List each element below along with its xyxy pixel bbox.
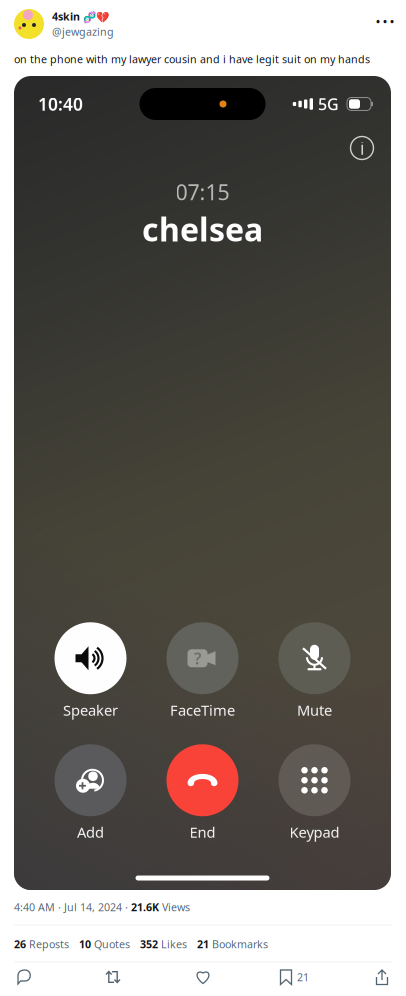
staticText: 26 bbox=[14, 937, 26, 951]
staticText: ? bbox=[194, 648, 201, 669]
staticText: on the phone with my lawyer cousin and i… bbox=[14, 52, 370, 66]
button[interactable]: ? bbox=[146, 622, 258, 720]
button[interactable]: 26 bbox=[14, 935, 69, 953]
button[interactable]: Repost bbox=[96, 963, 130, 991]
button[interactable]: Add bbox=[34, 744, 146, 842]
staticText: Likes bbox=[161, 937, 187, 951]
staticText: Views bbox=[159, 900, 190, 914]
staticText: Bookmarks bbox=[212, 937, 268, 951]
staticText: 07:15 bbox=[175, 178, 229, 206]
staticText: 21 bbox=[297, 970, 309, 984]
staticText: chelsea bbox=[142, 208, 263, 250]
button[interactable]: More options bbox=[369, 7, 401, 35]
button[interactable]: Bookmark, 21 bbox=[277, 963, 311, 991]
button[interactable]: Reply bbox=[8, 963, 42, 991]
button[interactable]: Share bbox=[365, 963, 399, 991]
button[interactable]: Mute bbox=[258, 622, 370, 720]
button[interactable]: Keypad bbox=[258, 744, 370, 842]
button[interactable]: 21 bbox=[197, 935, 268, 953]
staticText: 5G bbox=[318, 93, 339, 115]
button[interactable]: 352 bbox=[140, 935, 187, 953]
staticText: Speaker bbox=[63, 700, 118, 720]
staticText: End bbox=[189, 822, 215, 842]
staticText: 21 bbox=[197, 937, 209, 951]
button[interactable]: Call info bbox=[344, 130, 380, 166]
staticText: • • • bbox=[376, 14, 394, 28]
staticText: 10 bbox=[79, 937, 91, 951]
staticText: 352 bbox=[140, 937, 158, 951]
staticText: 4skin 🧬💔 bbox=[52, 9, 109, 23]
staticText: Mute bbox=[297, 700, 332, 720]
button[interactable]: Speaker bbox=[34, 622, 146, 720]
button[interactable]: Like bbox=[186, 963, 220, 991]
staticText: Add bbox=[77, 822, 104, 842]
staticText: i bbox=[360, 136, 364, 159]
staticText: 10:40 bbox=[38, 92, 83, 115]
staticText: Quotes bbox=[94, 937, 130, 951]
staticText: 4:40 AM · Jul 14, 2024 · bbox=[14, 900, 131, 914]
staticText: FaceTime bbox=[170, 700, 235, 720]
staticText: @jewgazing bbox=[52, 24, 114, 39]
staticText: Keypad bbox=[289, 822, 339, 842]
button[interactable]: 10 bbox=[79, 935, 130, 953]
staticText: Reposts bbox=[29, 937, 69, 951]
staticText: 21.6K bbox=[131, 900, 159, 914]
button[interactable]: End bbox=[146, 744, 258, 842]
